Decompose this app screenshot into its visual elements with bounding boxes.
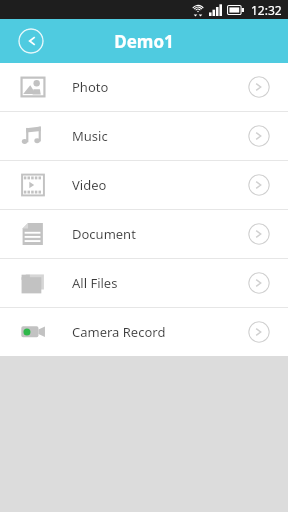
button[interactable]: Video (0, 161, 288, 209)
button[interactable]: Photo (0, 63, 288, 111)
button[interactable]: Back (18, 28, 44, 54)
button[interactable]: Open Document (248, 223, 270, 245)
staticText: Demo1 (114, 30, 174, 53)
staticText: Video (72, 176, 107, 194)
button[interactable]: All Files (0, 259, 288, 307)
staticText: 12:32 (251, 2, 282, 18)
staticText: Document (72, 225, 136, 243)
staticText: Photo (72, 78, 109, 96)
button[interactable]: Open Video (248, 174, 270, 196)
button[interactable]: Open Photo (248, 76, 270, 98)
staticText: Camera Record (72, 323, 166, 341)
button[interactable]: Open Camera Record (248, 321, 270, 343)
staticText: Music (72, 127, 108, 145)
button[interactable]: Open Music (248, 125, 270, 147)
button[interactable]: Music (0, 112, 288, 160)
staticText: All Files (72, 274, 118, 292)
button[interactable]: Camera Record (0, 308, 288, 356)
button[interactable]: Document (0, 210, 288, 258)
button[interactable]: Open All Files (248, 272, 270, 294)
